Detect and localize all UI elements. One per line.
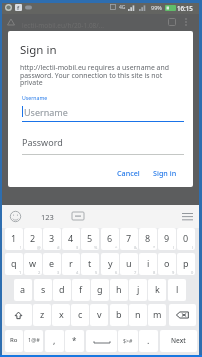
- staticText: 3: [49, 232, 55, 244]
- staticText: 4: [76, 270, 79, 275]
- staticText: n: [135, 308, 141, 320]
- button[interactable]: Ro: [5, 330, 23, 352]
- button[interactable]: Backspace: [169, 304, 196, 326]
- button[interactable]: r: [62, 253, 80, 275]
- button[interactable]: Shift: [5, 304, 32, 326]
- button[interactable]: Cancel: [114, 165, 143, 181]
- button[interactable]: o: [158, 253, 176, 275]
- staticText: p: [183, 257, 189, 269]
- button[interactable]: l: [168, 279, 186, 301]
- staticText: &: [134, 245, 137, 250]
- staticText: 5: [87, 232, 93, 244]
- staticText: 3: [57, 270, 60, 275]
- button[interactable]: q: [5, 253, 23, 275]
- button[interactable]: Sign in: [150, 165, 180, 181]
- button[interactable]: x: [52, 304, 70, 326]
- staticText: 1@#: [28, 336, 40, 344]
- staticText: c: [78, 308, 83, 320]
- staticText: ^: [115, 245, 118, 250]
- staticText: 0: [183, 232, 189, 244]
- button[interactable]: b: [110, 304, 128, 326]
- staticText: v: [97, 308, 102, 320]
- button[interactable]: i: [139, 253, 157, 275]
- button[interactable]: 1: [5, 228, 23, 250]
- staticText: w: [29, 257, 37, 269]
- staticText: 2: [38, 270, 41, 275]
- button[interactable]: j: [129, 279, 147, 301]
- staticText: ,: [53, 334, 56, 346]
- button[interactable]: ,: [45, 330, 64, 352]
- button[interactable]: 8: [139, 228, 157, 250]
- staticText: t: [88, 257, 92, 269]
- button[interactable]: Username: [22, 105, 184, 119]
- staticText: s: [41, 283, 46, 295]
- button[interactable]: z: [33, 304, 51, 326]
- button[interactable]: s: [34, 279, 52, 301]
- button[interactable]: f: [72, 279, 90, 301]
- button[interactable]: Password: [22, 136, 184, 150]
- staticText: i: [147, 257, 150, 269]
- staticText: 6: [115, 270, 118, 275]
- staticText: Cancel: [117, 168, 140, 178]
- staticText: 0: [191, 270, 194, 275]
- button[interactable]: t: [81, 253, 99, 275]
- staticText: 2: [30, 232, 36, 244]
- staticText: u: [126, 257, 132, 269]
- button[interactable]: p: [177, 253, 195, 275]
- staticText: 9: [164, 232, 170, 244]
- staticText: Password: [22, 136, 63, 148]
- button[interactable]: 7: [120, 228, 138, 250]
- button[interactable]: 3: [43, 228, 61, 250]
- button[interactable]: 6: [101, 228, 119, 250]
- staticText: a: [20, 283, 26, 295]
- staticText: 6: [107, 232, 113, 244]
- staticText: $: [76, 245, 79, 250]
- button[interactable]: g: [91, 279, 109, 301]
- staticText: 16:15: [177, 4, 193, 12]
- staticText: z: [40, 308, 45, 320]
- button[interactable]: k: [148, 279, 166, 301]
- button[interactable]: e: [43, 253, 61, 275]
- button[interactable]: Emoji: [9, 210, 22, 223]
- button[interactable]: w: [24, 253, 42, 275]
- button[interactable]: u: [120, 253, 138, 275]
- button[interactable]: Keyboard layout: [71, 210, 85, 222]
- staticText: *: [153, 245, 156, 250]
- button[interactable]: a: [14, 279, 32, 301]
- staticText: e: [49, 257, 55, 269]
- button[interactable]: .: [139, 330, 158, 352]
- staticText: h: [116, 283, 122, 295]
- button[interactable]: n: [129, 304, 147, 326]
- button[interactable]: y: [101, 253, 119, 275]
- staticText: y: [108, 257, 113, 269]
- staticText: 8: [145, 232, 151, 244]
- staticText: 4G: [119, 4, 126, 11]
- button[interactable]: 123: [41, 212, 54, 222]
- staticText: m: [153, 308, 162, 320]
- button[interactable]: 5: [81, 228, 99, 250]
- button[interactable]: v: [90, 304, 108, 326]
- button[interactable]: $>#: [118, 330, 138, 352]
- button[interactable]: c: [71, 304, 89, 326]
- staticText: 1: [19, 270, 22, 275]
- staticText: 5: [95, 270, 98, 275]
- button[interactable]: 9: [158, 228, 176, 250]
- staticText: 9: [172, 270, 175, 275]
- staticText: (: [173, 245, 175, 250]
- button[interactable]: *: [65, 330, 84, 352]
- button[interactable]: Menu: [181, 210, 194, 223]
- button[interactable]: Next: [160, 330, 197, 352]
- staticText: .: [147, 334, 150, 346]
- button[interactable]: h: [110, 279, 128, 301]
- button[interactable]: 2: [24, 228, 42, 250]
- staticText: k: [155, 283, 160, 295]
- button[interactable]: 1@#: [24, 330, 43, 352]
- button[interactable]: 4: [62, 228, 80, 250]
- staticText: f: [17, 4, 20, 11]
- button[interactable]: m: [148, 304, 166, 326]
- button[interactable]: d: [53, 279, 71, 301]
- staticText: d: [59, 283, 65, 295]
- button[interactable]: 0: [177, 228, 195, 250]
- button[interactable]: Space: [86, 330, 117, 352]
- staticText: 4: [68, 232, 74, 244]
